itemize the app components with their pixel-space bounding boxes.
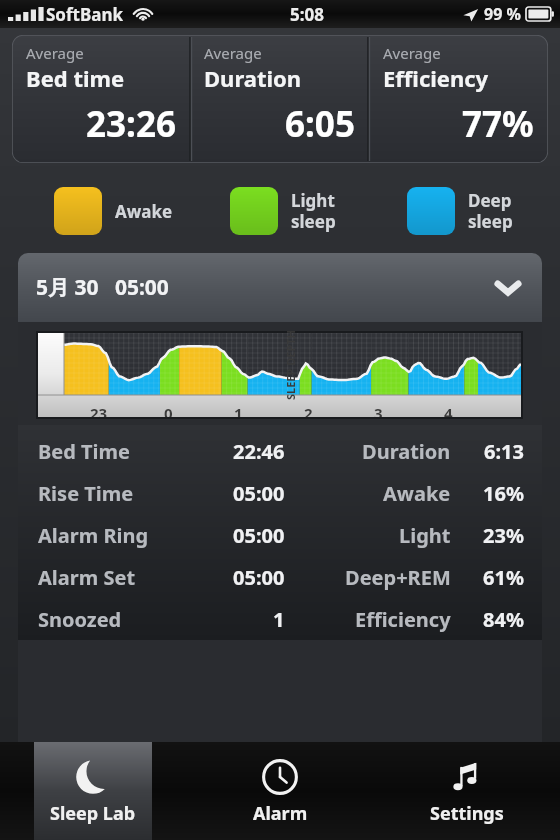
staticText: Light <box>399 522 451 549</box>
staticText: Settings <box>430 801 504 826</box>
staticText: Average <box>26 43 84 63</box>
button[interactable]: Snoozed <box>38 598 524 640</box>
button[interactable]: Alarm <box>221 742 339 840</box>
staticText: Efficiency <box>355 606 451 633</box>
staticText: Efficiency <box>383 63 489 93</box>
staticText: Average <box>383 43 441 63</box>
staticText: Sleep Lab <box>50 801 136 826</box>
button[interactable]: Rise Time <box>38 472 524 514</box>
staticText: 05:00 <box>233 564 285 591</box>
staticText: 5月 30 05:00 <box>36 273 169 302</box>
staticText: 1 <box>234 403 243 417</box>
other: Collapse <box>492 272 524 304</box>
staticText: Awake <box>115 200 173 223</box>
button[interactable]: Average <box>190 35 369 163</box>
staticText: 6:05 <box>285 100 355 148</box>
staticText: Alarm Ring <box>38 522 149 549</box>
staticText: 6:13 <box>484 438 524 465</box>
button[interactable]: Deep sleep <box>407 187 513 235</box>
staticText: 0 <box>164 403 173 417</box>
staticText: 23 <box>90 403 108 417</box>
staticText: 3 <box>374 403 383 417</box>
button[interactable]: Average <box>12 35 190 163</box>
staticText: 99 % <box>484 3 521 25</box>
staticText: 77% <box>462 100 534 148</box>
staticText: 22:46 <box>233 438 285 465</box>
staticText: 4 <box>444 403 453 417</box>
button[interactable]: Alarm Set <box>38 556 524 598</box>
button[interactable]: Awake <box>54 187 173 235</box>
staticText: Average <box>204 43 262 63</box>
staticText: 61% <box>483 564 524 591</box>
button[interactable]: Settings <box>408 742 526 840</box>
staticText: 23% <box>483 522 524 549</box>
staticText: Rise Time <box>38 480 134 507</box>
button[interactable]: Alarm Ring <box>38 514 524 556</box>
button[interactable]: Sleep Lab <box>34 742 152 840</box>
button[interactable]: Light sleep <box>230 187 336 235</box>
staticText: 16% <box>483 480 524 507</box>
staticText: 2 <box>304 403 313 417</box>
staticText: Alarm <box>253 801 308 826</box>
staticText: Duration <box>204 63 302 93</box>
staticText: SoftBank <box>46 3 124 26</box>
staticText: SLEEP DEPTH <box>283 329 298 400</box>
staticText: 23:26 <box>86 100 176 148</box>
staticText: 05:00 <box>233 522 285 549</box>
staticText: 84% <box>483 606 524 633</box>
button[interactable]: Average <box>369 35 548 163</box>
staticText: Alarm Set <box>38 564 136 591</box>
staticText: Duration <box>362 438 451 465</box>
staticText: Bed Time <box>38 438 131 465</box>
staticText: 1 <box>273 606 285 633</box>
button[interactable]: 5月 30 05:00 <box>18 253 542 322</box>
button[interactable]: Bed Time <box>38 430 524 472</box>
staticText: Deep sleep <box>468 189 513 233</box>
staticText: Light sleep <box>291 189 336 233</box>
staticText: Awake <box>383 480 451 507</box>
staticText: Bed time <box>26 63 125 93</box>
staticText: Deep+REM <box>345 564 451 591</box>
staticText: Snoozed <box>38 606 122 633</box>
staticText: 05:00 <box>233 480 285 507</box>
staticText: 5:08 <box>290 3 324 26</box>
